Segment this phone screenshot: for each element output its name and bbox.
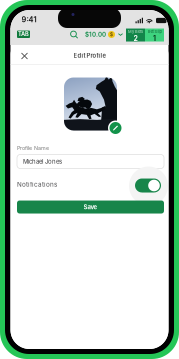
button[interactable]: Search [70, 30, 78, 38]
staticText: Michael Jones [23, 158, 62, 165]
button[interactable]: TAB home [17, 30, 30, 38]
staticText: Edit Profile [73, 52, 105, 59]
staticText: TAB [18, 31, 29, 38]
staticText: Profile Name [17, 145, 49, 151]
staticText: 9:41 [21, 15, 36, 24]
button[interactable]: $10.00 [85, 31, 123, 38]
button[interactable]: Save [17, 200, 164, 213]
staticText: $ [110, 32, 113, 37]
staticText: Notifications [17, 181, 57, 188]
button[interactable]: Notifications [135, 178, 161, 192]
staticText: $10.00 [85, 31, 106, 38]
button[interactable]: My Bets [126, 27, 145, 42]
staticText: Save [83, 203, 97, 211]
button[interactable]: Bet Slip [145, 27, 164, 42]
staticText: My Bets [128, 29, 143, 34]
button[interactable]: Close [17, 49, 31, 62]
staticText: Bet Slip [147, 29, 161, 34]
button[interactable]: Change profile photo [108, 120, 123, 135]
staticText: 2 [133, 34, 137, 43]
staticText: 1 [153, 34, 156, 43]
